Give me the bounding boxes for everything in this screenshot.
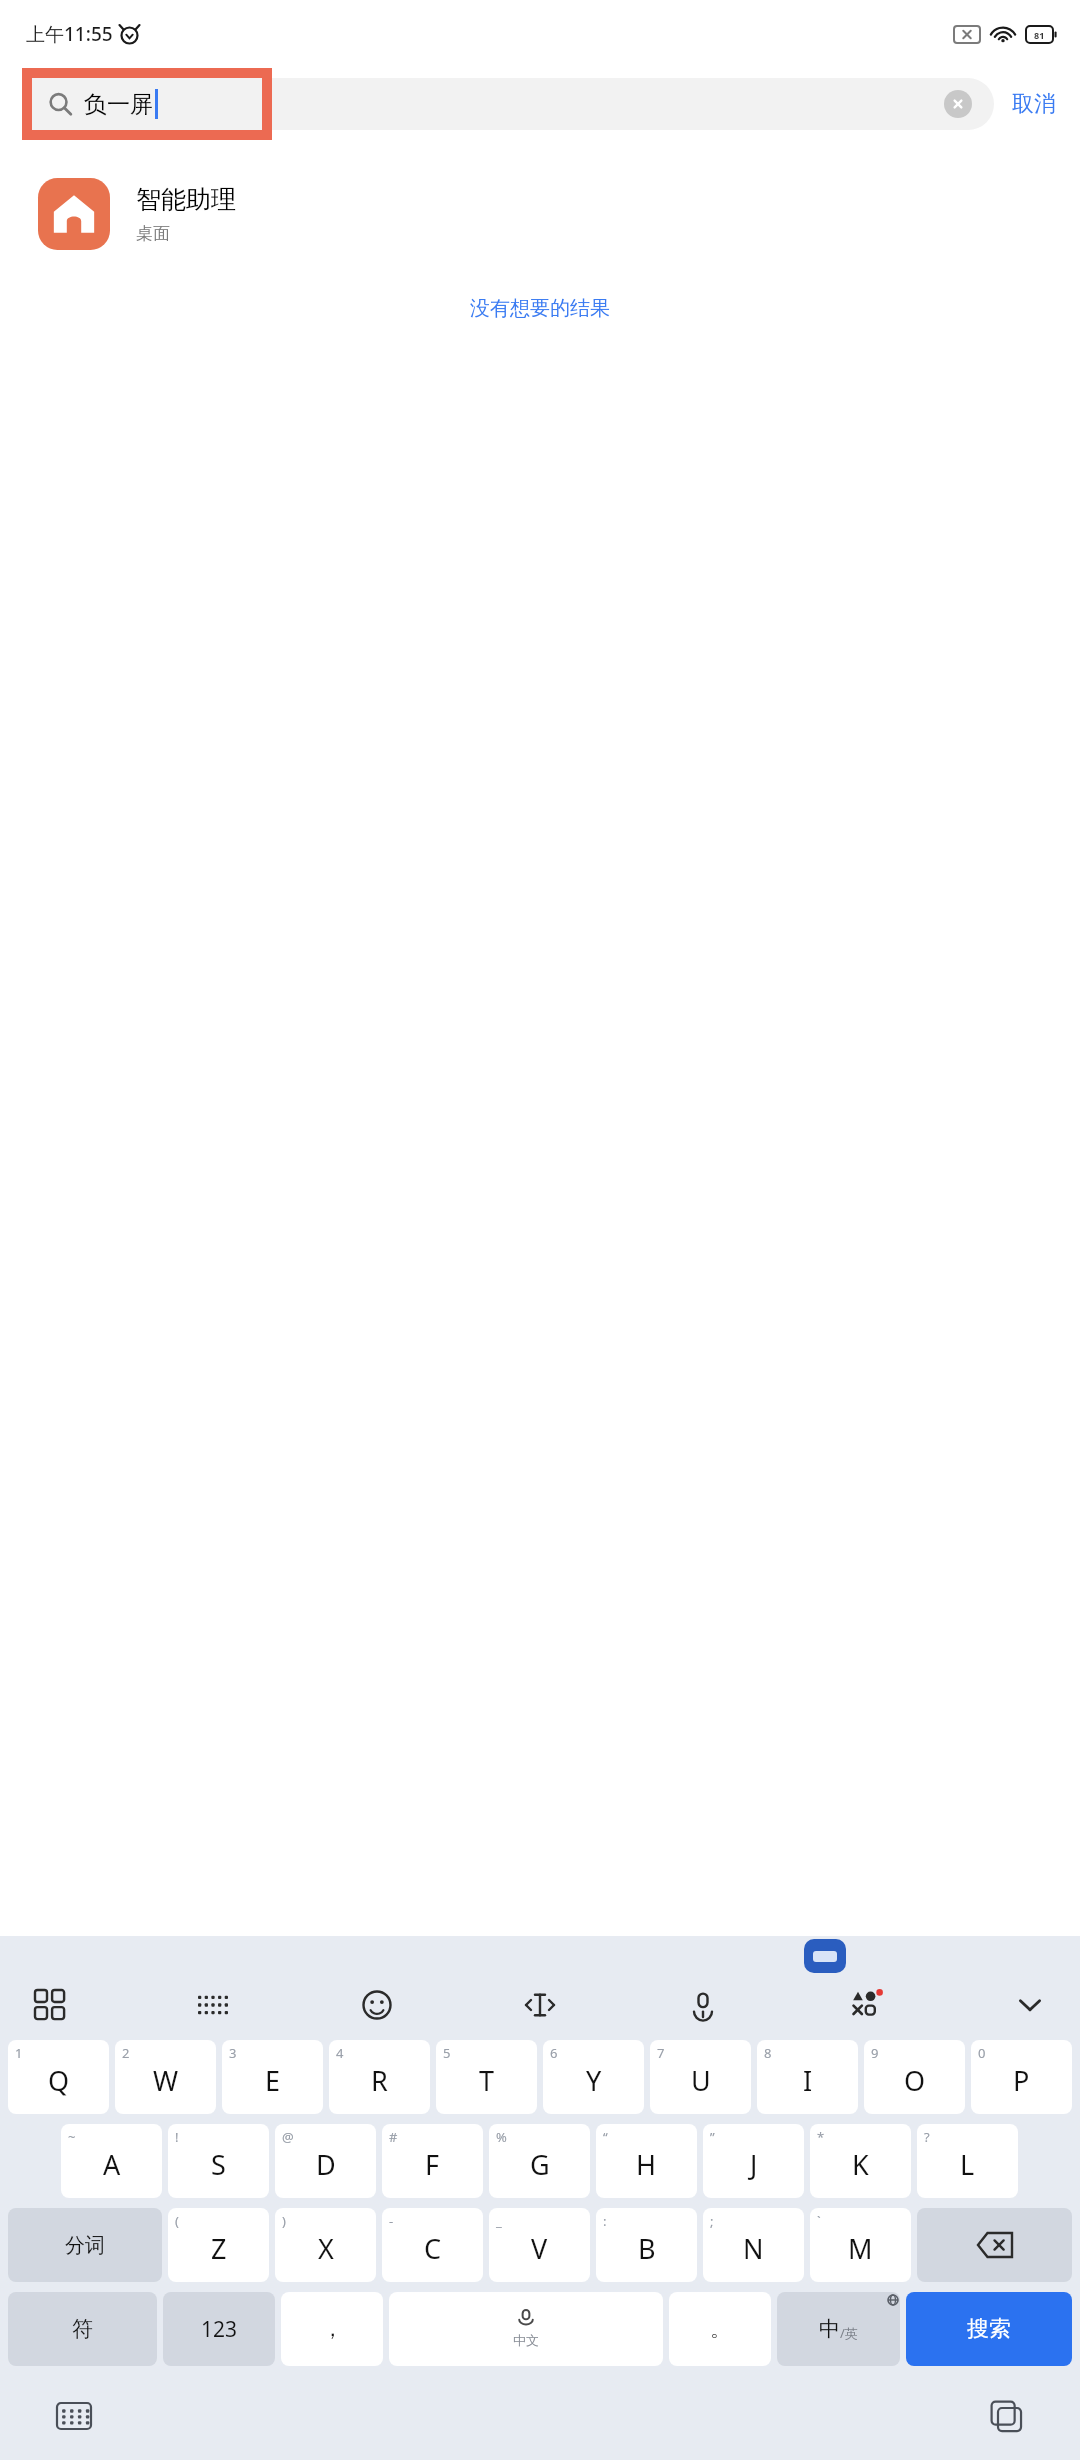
staticText: ~ [68, 2128, 76, 2146]
button[interactable]: ” [703, 2124, 804, 2198]
staticText: D [316, 2146, 336, 2183]
staticText: R [371, 2062, 388, 2099]
button[interactable]: Voice input [679, 1981, 727, 2029]
staticText: ; [710, 2212, 714, 2230]
staticText: 没有想要的结果 [470, 296, 610, 321]
button[interactable]: % [489, 2124, 590, 2198]
staticText: N [743, 2230, 764, 2267]
button[interactable]: “ [596, 2124, 697, 2198]
staticText: A [103, 2146, 121, 2183]
button[interactable]: ` [810, 2208, 911, 2282]
staticText: 中文 [513, 2332, 539, 2348]
button[interactable]: 4 [329, 2040, 430, 2114]
button[interactable]: 1 [8, 2040, 109, 2114]
staticText: 上午11:55 [26, 21, 113, 47]
button[interactable]: Clear [272, 78, 994, 130]
button[interactable]: Hide keyboard [1006, 1981, 1054, 2029]
staticText: 5 [443, 2044, 451, 2062]
button[interactable]: ; [703, 2208, 804, 2282]
staticText: 智能助理 [136, 184, 236, 215]
staticText: - [389, 2212, 394, 2230]
button[interactable]: ) [275, 2208, 376, 2282]
staticText: ) [282, 2212, 286, 2230]
button[interactable]: @ [275, 2124, 376, 2198]
staticText: 4 [336, 2044, 344, 2062]
staticText: 7 [657, 2044, 665, 2062]
button[interactable]: 符 [8, 2292, 157, 2366]
button[interactable]: 中 [777, 2292, 900, 2366]
staticText: % [496, 2128, 507, 2146]
staticText: 9 [871, 2044, 879, 2062]
staticText: G [530, 2146, 550, 2183]
button[interactable]: 取消 [1012, 90, 1056, 118]
staticText: L [960, 2146, 975, 2183]
staticText: B [638, 2230, 656, 2267]
button[interactable]: Clear [944, 90, 972, 118]
staticText: Z [211, 2230, 227, 2267]
staticText: 搜索 [967, 2315, 1011, 2343]
button[interactable]: 负一屏 [32, 78, 262, 130]
button[interactable]: ! [168, 2124, 269, 2198]
button[interactable]: 7 [650, 2040, 751, 2114]
button[interactable]: : [596, 2208, 697, 2282]
staticText: _ [496, 2212, 502, 2230]
button[interactable]: 6 [543, 2040, 644, 2114]
button[interactable]: ， [281, 2292, 383, 2366]
staticText: ` [817, 2212, 821, 2230]
staticText: 6 [550, 2044, 558, 2062]
button[interactable]: Backspace [917, 2208, 1072, 2282]
button[interactable]: 智能助理 [0, 166, 1080, 262]
button[interactable]: ( [168, 2208, 269, 2282]
button[interactable]: 搜索 [906, 2292, 1072, 2366]
staticText: T [479, 2062, 495, 2099]
button[interactable]: ~ [61, 2124, 162, 2198]
button[interactable]: 没有想要的结果 [456, 290, 624, 327]
button[interactable]: _ [489, 2208, 590, 2282]
staticText: 1 [15, 2044, 23, 2062]
staticText: U [691, 2062, 711, 2099]
staticText: ! [175, 2128, 179, 2146]
button[interactable]: - [382, 2208, 483, 2282]
button[interactable]: 0 [971, 2040, 1072, 2114]
button[interactable]: Keyboard layout [189, 1981, 237, 2029]
staticText: 符 [72, 2316, 93, 2342]
button[interactable]: Edit [516, 1981, 564, 2029]
staticText: O [904, 2062, 926, 2099]
button[interactable]: Stickers [843, 1981, 891, 2029]
button[interactable]: 123 [163, 2292, 275, 2366]
staticText: ， [322, 2316, 343, 2342]
button[interactable]: 5 [436, 2040, 537, 2114]
button[interactable]: 3 [222, 2040, 323, 2114]
staticText: * [817, 2128, 825, 2146]
staticText: 桌面 [136, 223, 170, 244]
staticText: H [636, 2146, 657, 2183]
staticText: 2 [122, 2044, 130, 2062]
button[interactable]: 2 [115, 2040, 216, 2114]
staticText: ( [175, 2212, 179, 2230]
button[interactable]: ? [917, 2124, 1018, 2198]
staticText: Q [48, 2062, 70, 2099]
button[interactable]: Assistant [804, 1939, 846, 1973]
staticText: ” [710, 2128, 715, 2146]
button[interactable]: 8 [757, 2040, 858, 2114]
staticText: # [389, 2128, 398, 2146]
staticText: V [531, 2230, 548, 2267]
button[interactable]: 9 [864, 2040, 965, 2114]
button[interactable]: Clipboard [980, 2390, 1032, 2442]
staticText: K [852, 2146, 869, 2183]
button[interactable]: 分词 [8, 2208, 162, 2282]
button[interactable]: Apps [26, 1981, 74, 2029]
staticText: /英 [840, 2324, 858, 2342]
staticText: W [153, 2062, 179, 2099]
staticText: “ [603, 2128, 608, 2146]
button[interactable]: * [810, 2124, 911, 2198]
staticText: : [603, 2212, 607, 2230]
button[interactable]: 。 [669, 2292, 771, 2366]
button[interactable]: # [382, 2124, 483, 2198]
button[interactable]: Space [389, 2292, 663, 2366]
staticText: @ [282, 2128, 294, 2146]
staticText: Y [586, 2062, 602, 2099]
button[interactable]: Emoji [353, 1981, 401, 2029]
button[interactable]: Switch keyboard [48, 2390, 100, 2442]
staticText: I [803, 2062, 813, 2099]
